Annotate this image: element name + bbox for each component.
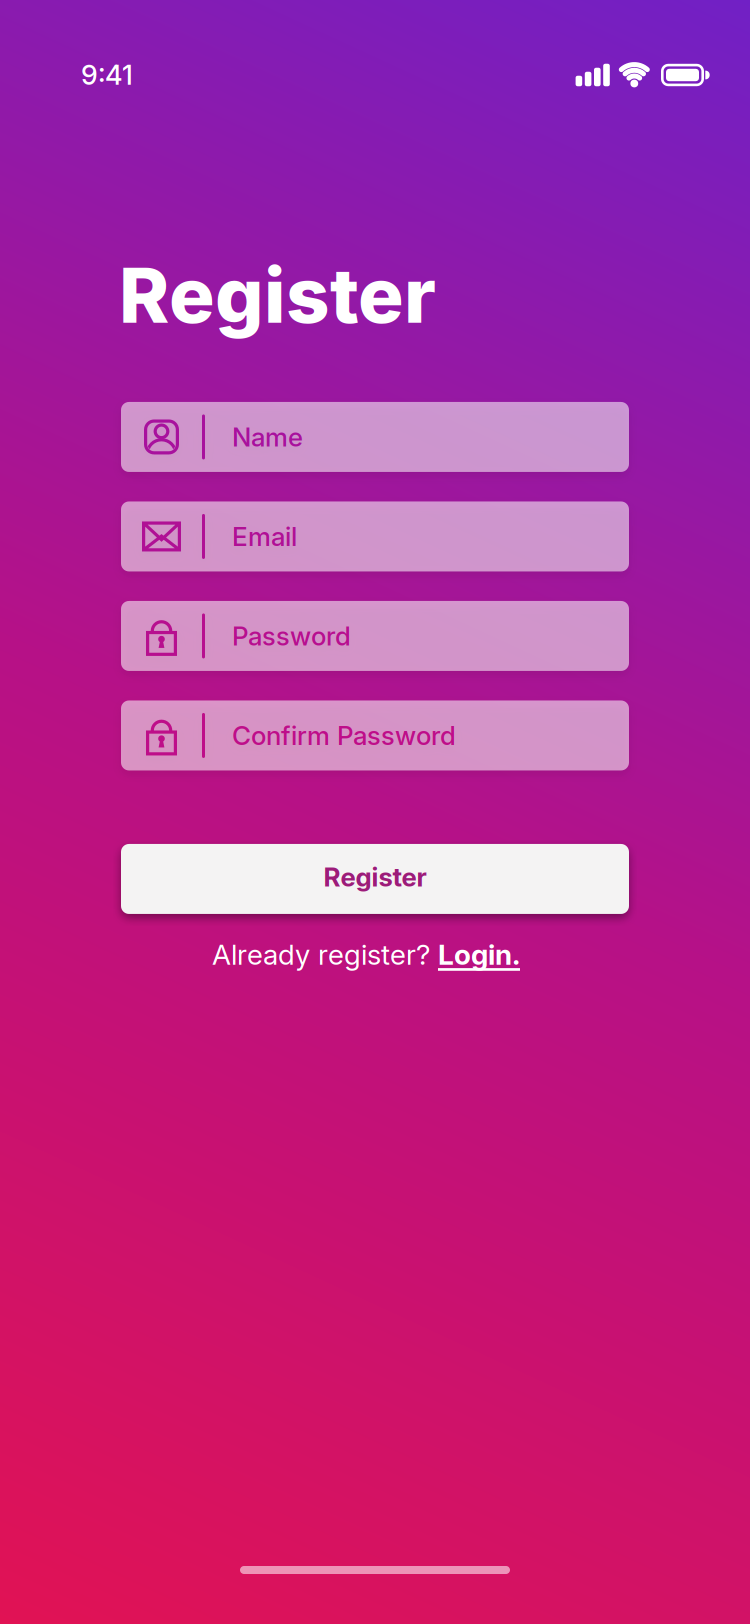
staticText: Confirm Password bbox=[232, 720, 456, 751]
staticText: 9:41 bbox=[81, 59, 133, 91]
button[interactable]: Already register? Login. bbox=[212, 938, 520, 971]
staticText: Register bbox=[323, 861, 426, 893]
button[interactable]: Name bbox=[121, 402, 629, 472]
button[interactable]: Email bbox=[121, 501, 629, 571]
button[interactable]: Confirm Password bbox=[121, 700, 629, 770]
button[interactable]: Password bbox=[121, 601, 629, 671]
staticText: Password bbox=[232, 620, 351, 652]
button[interactable]: Register bbox=[121, 844, 629, 914]
staticText: Register bbox=[119, 249, 436, 341]
staticText: Already register? Login. bbox=[212, 938, 520, 971]
staticText: Email bbox=[232, 521, 297, 552]
staticText: Name bbox=[232, 421, 303, 453]
